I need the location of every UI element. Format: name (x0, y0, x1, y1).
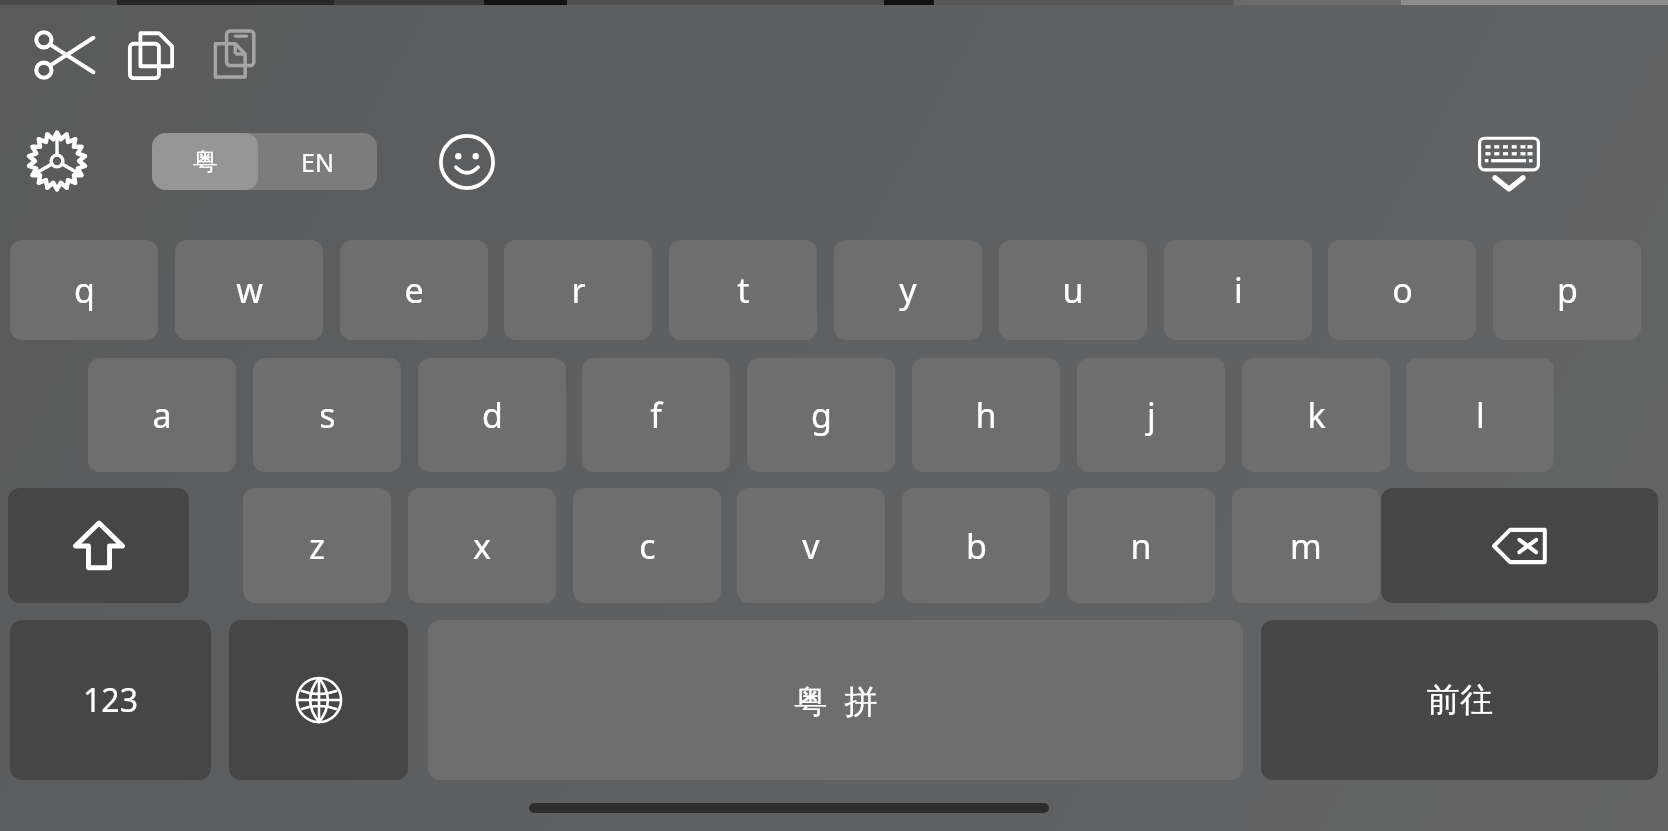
staticText: b (966, 523, 987, 569)
button[interactable]: z (243, 488, 391, 603)
button[interactable]: u (999, 240, 1147, 340)
staticText: s (319, 392, 336, 438)
button[interactable]: Shift (8, 488, 189, 603)
button[interactable]: a (88, 358, 236, 472)
staticText: k (1307, 392, 1326, 438)
button[interactable]: Cut (32, 22, 98, 88)
button[interactable]: 粤 拼 (428, 620, 1243, 780)
button[interactable]: Copy (118, 22, 184, 88)
button[interactable]: 123 (10, 620, 211, 780)
staticText: d (482, 392, 503, 438)
button[interactable]: Switch language (229, 620, 408, 780)
button[interactable]: c (573, 488, 721, 603)
staticText: e (404, 267, 424, 313)
button[interactable]: Hide keyboard (1474, 129, 1544, 195)
button[interactable]: x (408, 488, 556, 603)
staticText: h (975, 392, 997, 438)
button[interactable]: j (1077, 358, 1225, 472)
button[interactable]: Paste (203, 22, 265, 86)
button[interactable]: p (1493, 240, 1641, 340)
button[interactable]: s (253, 358, 401, 472)
button[interactable]: w (175, 240, 323, 340)
button[interactable]: 前往 (1261, 620, 1658, 780)
staticText: t (737, 267, 750, 313)
staticText: 粤 (193, 146, 218, 177)
button[interactable]: q (10, 240, 158, 340)
button[interactable]: v (737, 488, 885, 603)
button[interactable]: h (912, 358, 1060, 472)
staticText: 前往 (1427, 679, 1493, 721)
staticText: g (811, 392, 832, 438)
button[interactable]: Backspace (1381, 488, 1658, 603)
button[interactable]: k (1242, 358, 1390, 472)
button[interactable]: f (582, 358, 730, 472)
button[interactable]: i (1164, 240, 1312, 340)
staticText: z (309, 523, 325, 569)
button[interactable]: n (1067, 488, 1215, 603)
button[interactable]: o (1328, 240, 1476, 340)
button[interactable]: d (418, 358, 566, 472)
staticText: c (639, 523, 656, 569)
staticText: EN (301, 145, 334, 179)
button[interactable]: b (902, 488, 1050, 603)
staticText: p (1557, 267, 1578, 313)
staticText: v (802, 523, 820, 569)
button[interactable]: l (1406, 358, 1554, 472)
button[interactable]: 粤 (152, 133, 258, 190)
staticText: q (74, 267, 95, 313)
staticText: x (473, 523, 491, 569)
button[interactable]: m (1232, 488, 1380, 603)
staticText: l (1476, 392, 1485, 438)
button[interactable]: Settings (26, 130, 88, 192)
staticText: o (1392, 267, 1413, 313)
button[interactable]: EN (258, 133, 377, 190)
staticText: n (1130, 523, 1152, 569)
staticText: 123 (83, 678, 138, 722)
staticText: r (571, 267, 586, 313)
staticText: w (236, 267, 263, 313)
staticText: j (1147, 392, 1156, 438)
button[interactable]: Emoji (438, 133, 496, 191)
staticText: y (899, 267, 917, 313)
button[interactable]: y (834, 240, 982, 340)
staticText: i (1234, 267, 1243, 313)
button[interactable]: g (747, 358, 895, 472)
staticText: m (1290, 523, 1322, 569)
button[interactable]: t (669, 240, 817, 340)
button[interactable]: r (504, 240, 652, 340)
staticText: a (152, 392, 172, 438)
staticText: 粤 拼 (794, 678, 878, 723)
staticText: f (650, 392, 662, 438)
button[interactable]: e (340, 240, 488, 340)
staticText: u (1062, 267, 1084, 313)
